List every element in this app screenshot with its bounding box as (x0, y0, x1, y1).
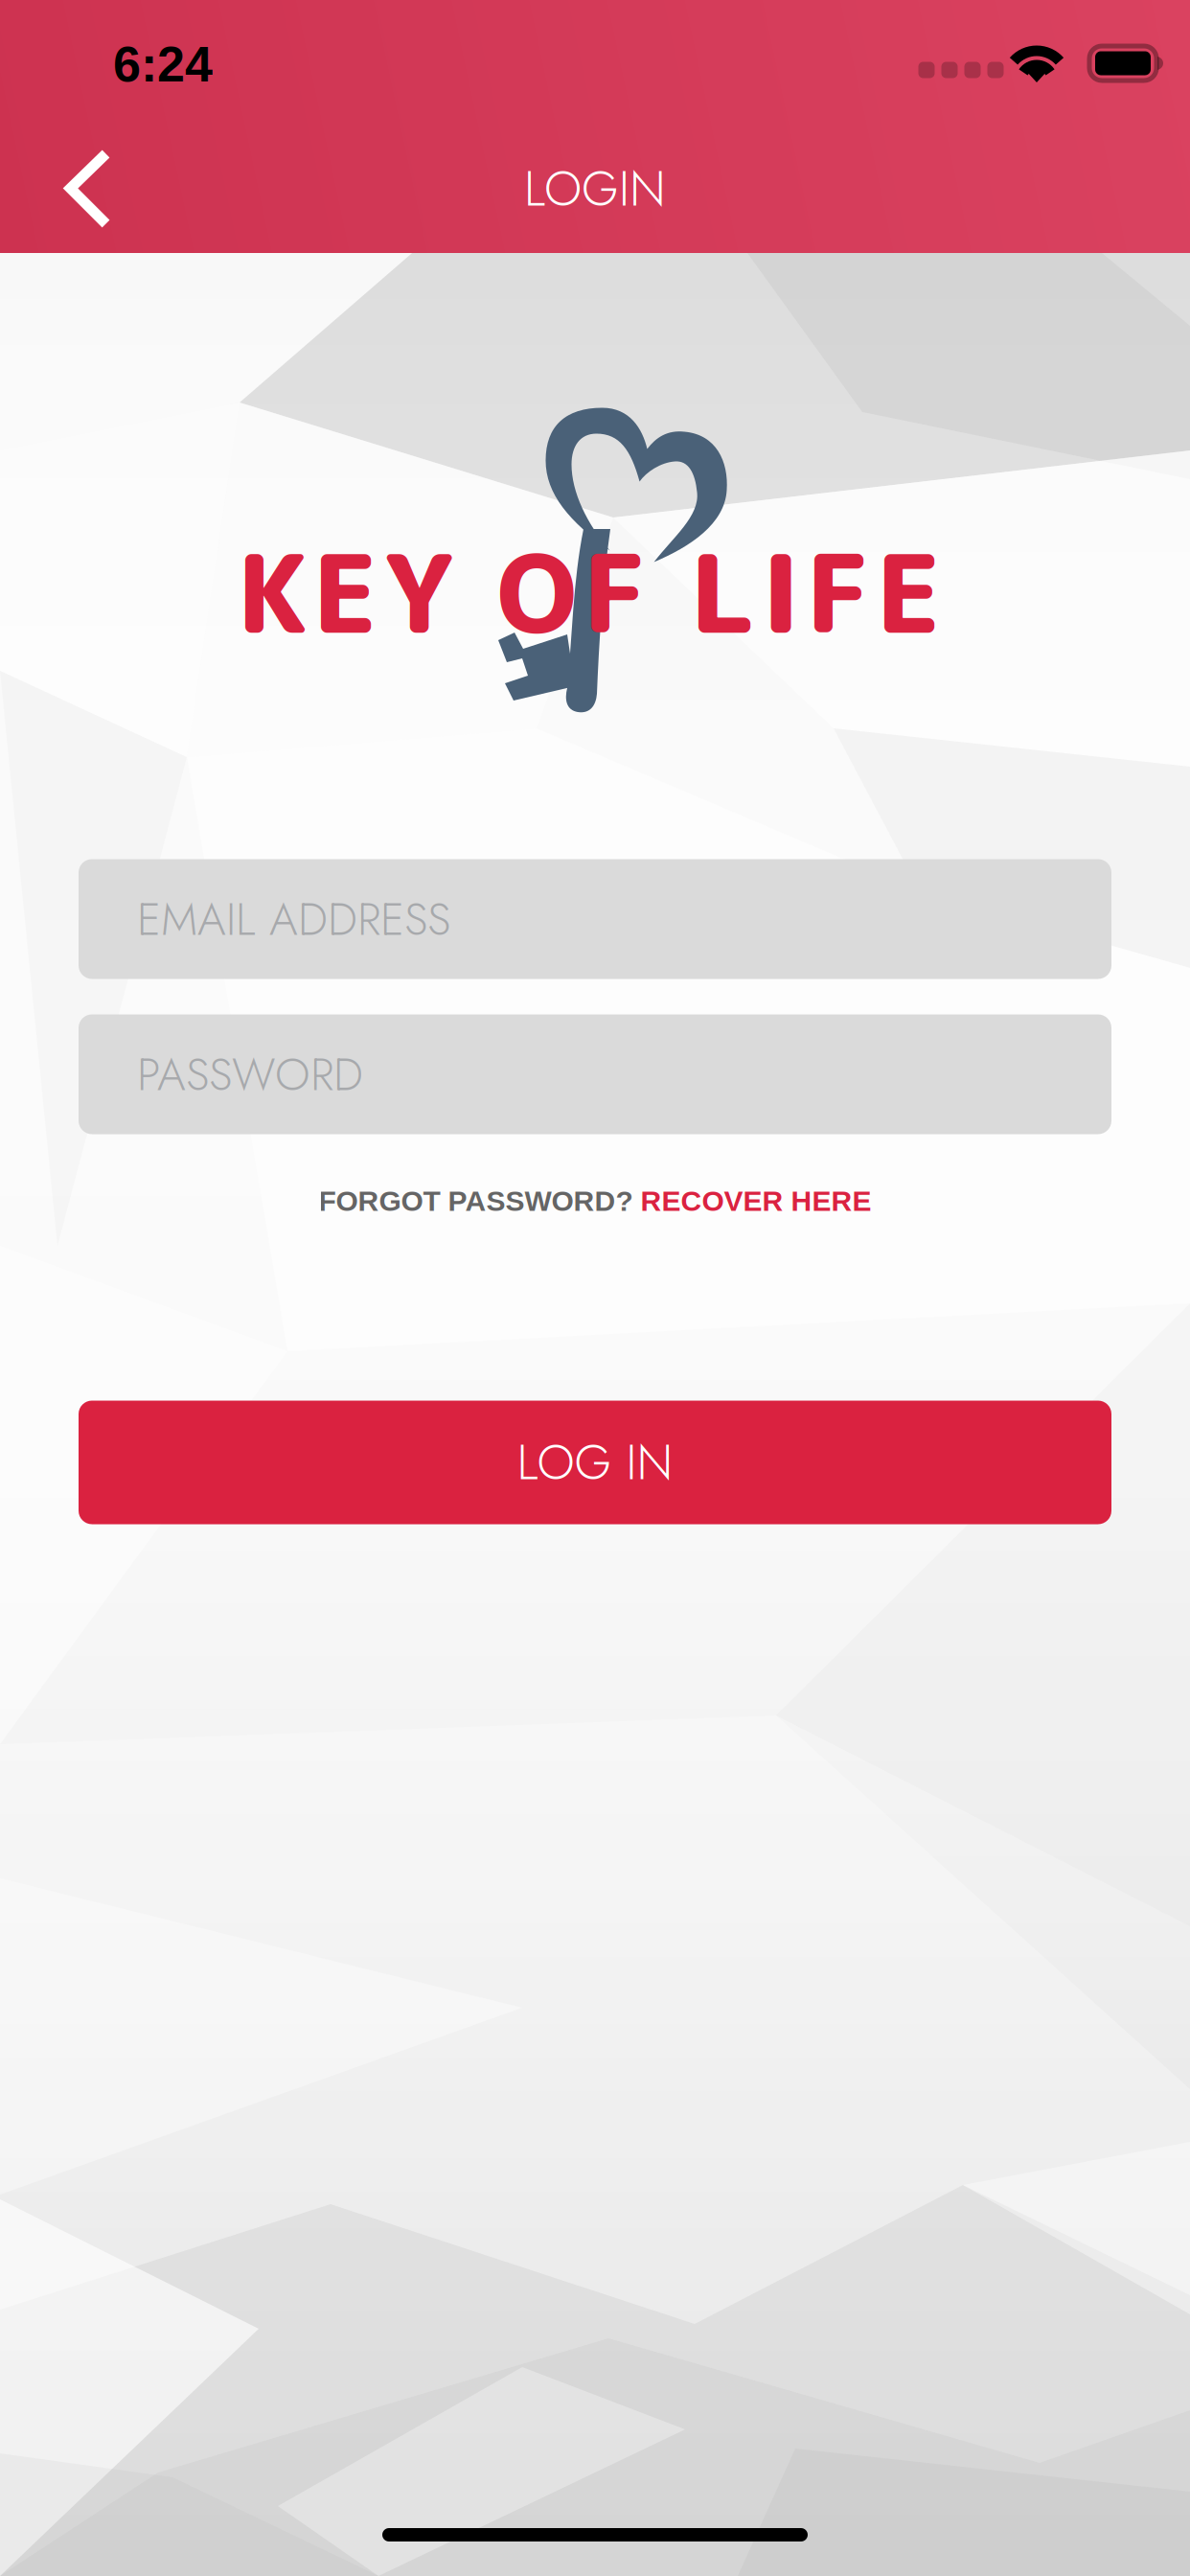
staticText: 6:24 (113, 36, 213, 92)
staticText: RECOVER HERE (641, 1185, 871, 1217)
button[interactable]: EMAIL ADDRESS (79, 859, 1111, 979)
staticText: FORGOT PASSWORD? (319, 1185, 641, 1217)
button[interactable]: Back (31, 131, 146, 246)
button[interactable]: PASSWORD (79, 1014, 1111, 1134)
staticText: EMAIL ADDRESS (137, 887, 450, 952)
staticText: KEY OF LIFE (237, 517, 941, 667)
button[interactable]: LOG IN (79, 1401, 1111, 1524)
staticText: LOGIN (524, 154, 666, 223)
staticText: LOG IN (517, 1428, 673, 1497)
button[interactable]: FORGOT PASSWORD? (299, 1171, 891, 1230)
staticText: PASSWORD (137, 1042, 363, 1107)
